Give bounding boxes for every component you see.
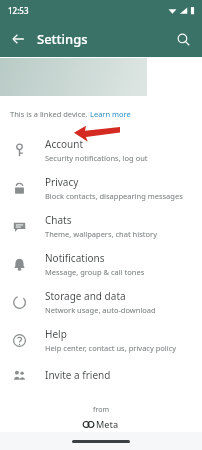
staticText: Account [45,137,84,151]
button[interactable]: Chats [0,207,202,245]
staticText: This is a linked device. [10,109,90,119]
staticText: Help center, contact us, privacy policy [45,343,177,353]
staticText: Meta [96,418,119,430]
button[interactable]: Search [169,25,197,53]
button[interactable]: Help [0,321,202,359]
staticText: Privacy [45,175,79,189]
staticText: Block contacts, disappearing messages [45,191,183,201]
staticText: Settings [37,30,88,48]
staticText: from [93,405,109,415]
button[interactable]: Storage and data [0,283,202,321]
button[interactable]: Account [0,131,202,169]
staticText: Chats [45,213,72,227]
staticText: Message, group & call tones [45,267,145,277]
button[interactable]: Notifications [0,245,202,283]
button[interactable]: Learn more [90,109,131,119]
staticText: 12:53 [8,5,29,16]
staticText: Network usage, auto-download [45,305,156,315]
staticText: Security notifications, log out [45,153,148,163]
button[interactable]: Back [4,25,32,53]
button[interactable]: Invite a friend [0,359,202,391]
staticText: Learn more [90,109,131,119]
staticText: Invite a friend [45,368,111,382]
staticText: Notifications [45,251,105,265]
staticText: Storage and data [45,289,126,303]
staticText: Theme, wallpapers, chat history [45,229,157,239]
staticText: Help [45,327,67,341]
button[interactable]: Privacy [0,169,202,207]
